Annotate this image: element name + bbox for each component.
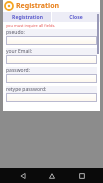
button[interactable]: Registration: [3, 0, 100, 12]
button[interactable]: Home: [44, 168, 59, 183]
button[interactable]: Registration: [3, 12, 51, 22]
button[interactable]: Back: [15, 168, 30, 183]
button[interactable]: [6, 55, 97, 64]
button[interactable]: Close: [52, 12, 100, 22]
staticText: Registration: [16, 1, 60, 11]
button[interactable]: [6, 74, 97, 83]
staticText: password:: [6, 67, 31, 74]
staticText: pseudo:: [6, 29, 25, 36]
button[interactable]: Recent apps: [74, 168, 89, 183]
staticText: you must inquire all fields.: [6, 23, 56, 28]
staticText: Registration: [12, 14, 43, 21]
staticText: Close: [69, 14, 83, 21]
button[interactable]: [6, 93, 97, 102]
button[interactable]: [6, 36, 97, 45]
staticText: retype password:: [6, 86, 47, 93]
staticText: your Email:: [6, 48, 33, 55]
